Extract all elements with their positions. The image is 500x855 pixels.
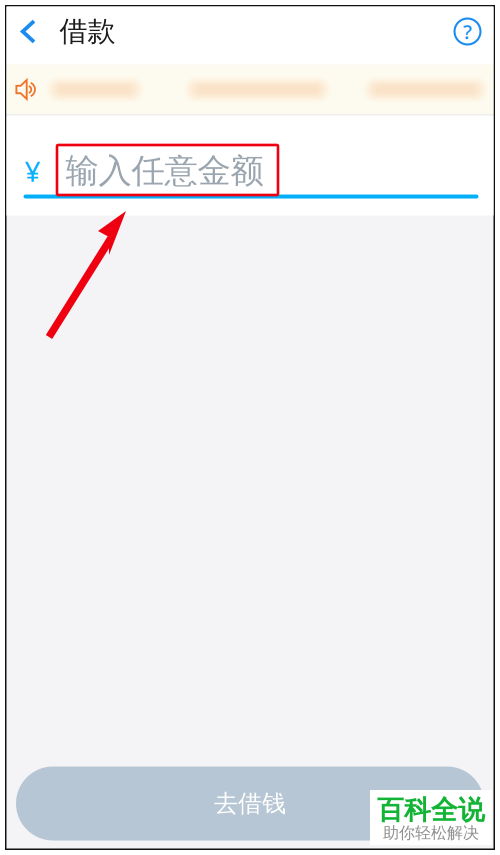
button[interactable]: 输入任意金额: [64, 154, 264, 187]
staticText: 百科全说: [377, 794, 485, 826]
button[interactable]: Help: [433, 8, 493, 54]
staticText: ?: [463, 18, 472, 45]
staticText: 借款: [59, 14, 115, 49]
button[interactable]: [6, 64, 493, 114]
staticText: 输入任意金额: [65, 150, 263, 191]
staticText: 去借钱: [214, 789, 286, 818]
button[interactable]: 去借钱: [16, 766, 484, 840]
button[interactable]: Back: [6, 8, 58, 54]
staticText: 助你轻松解决: [383, 823, 479, 843]
staticText: ¥: [24, 152, 40, 190]
